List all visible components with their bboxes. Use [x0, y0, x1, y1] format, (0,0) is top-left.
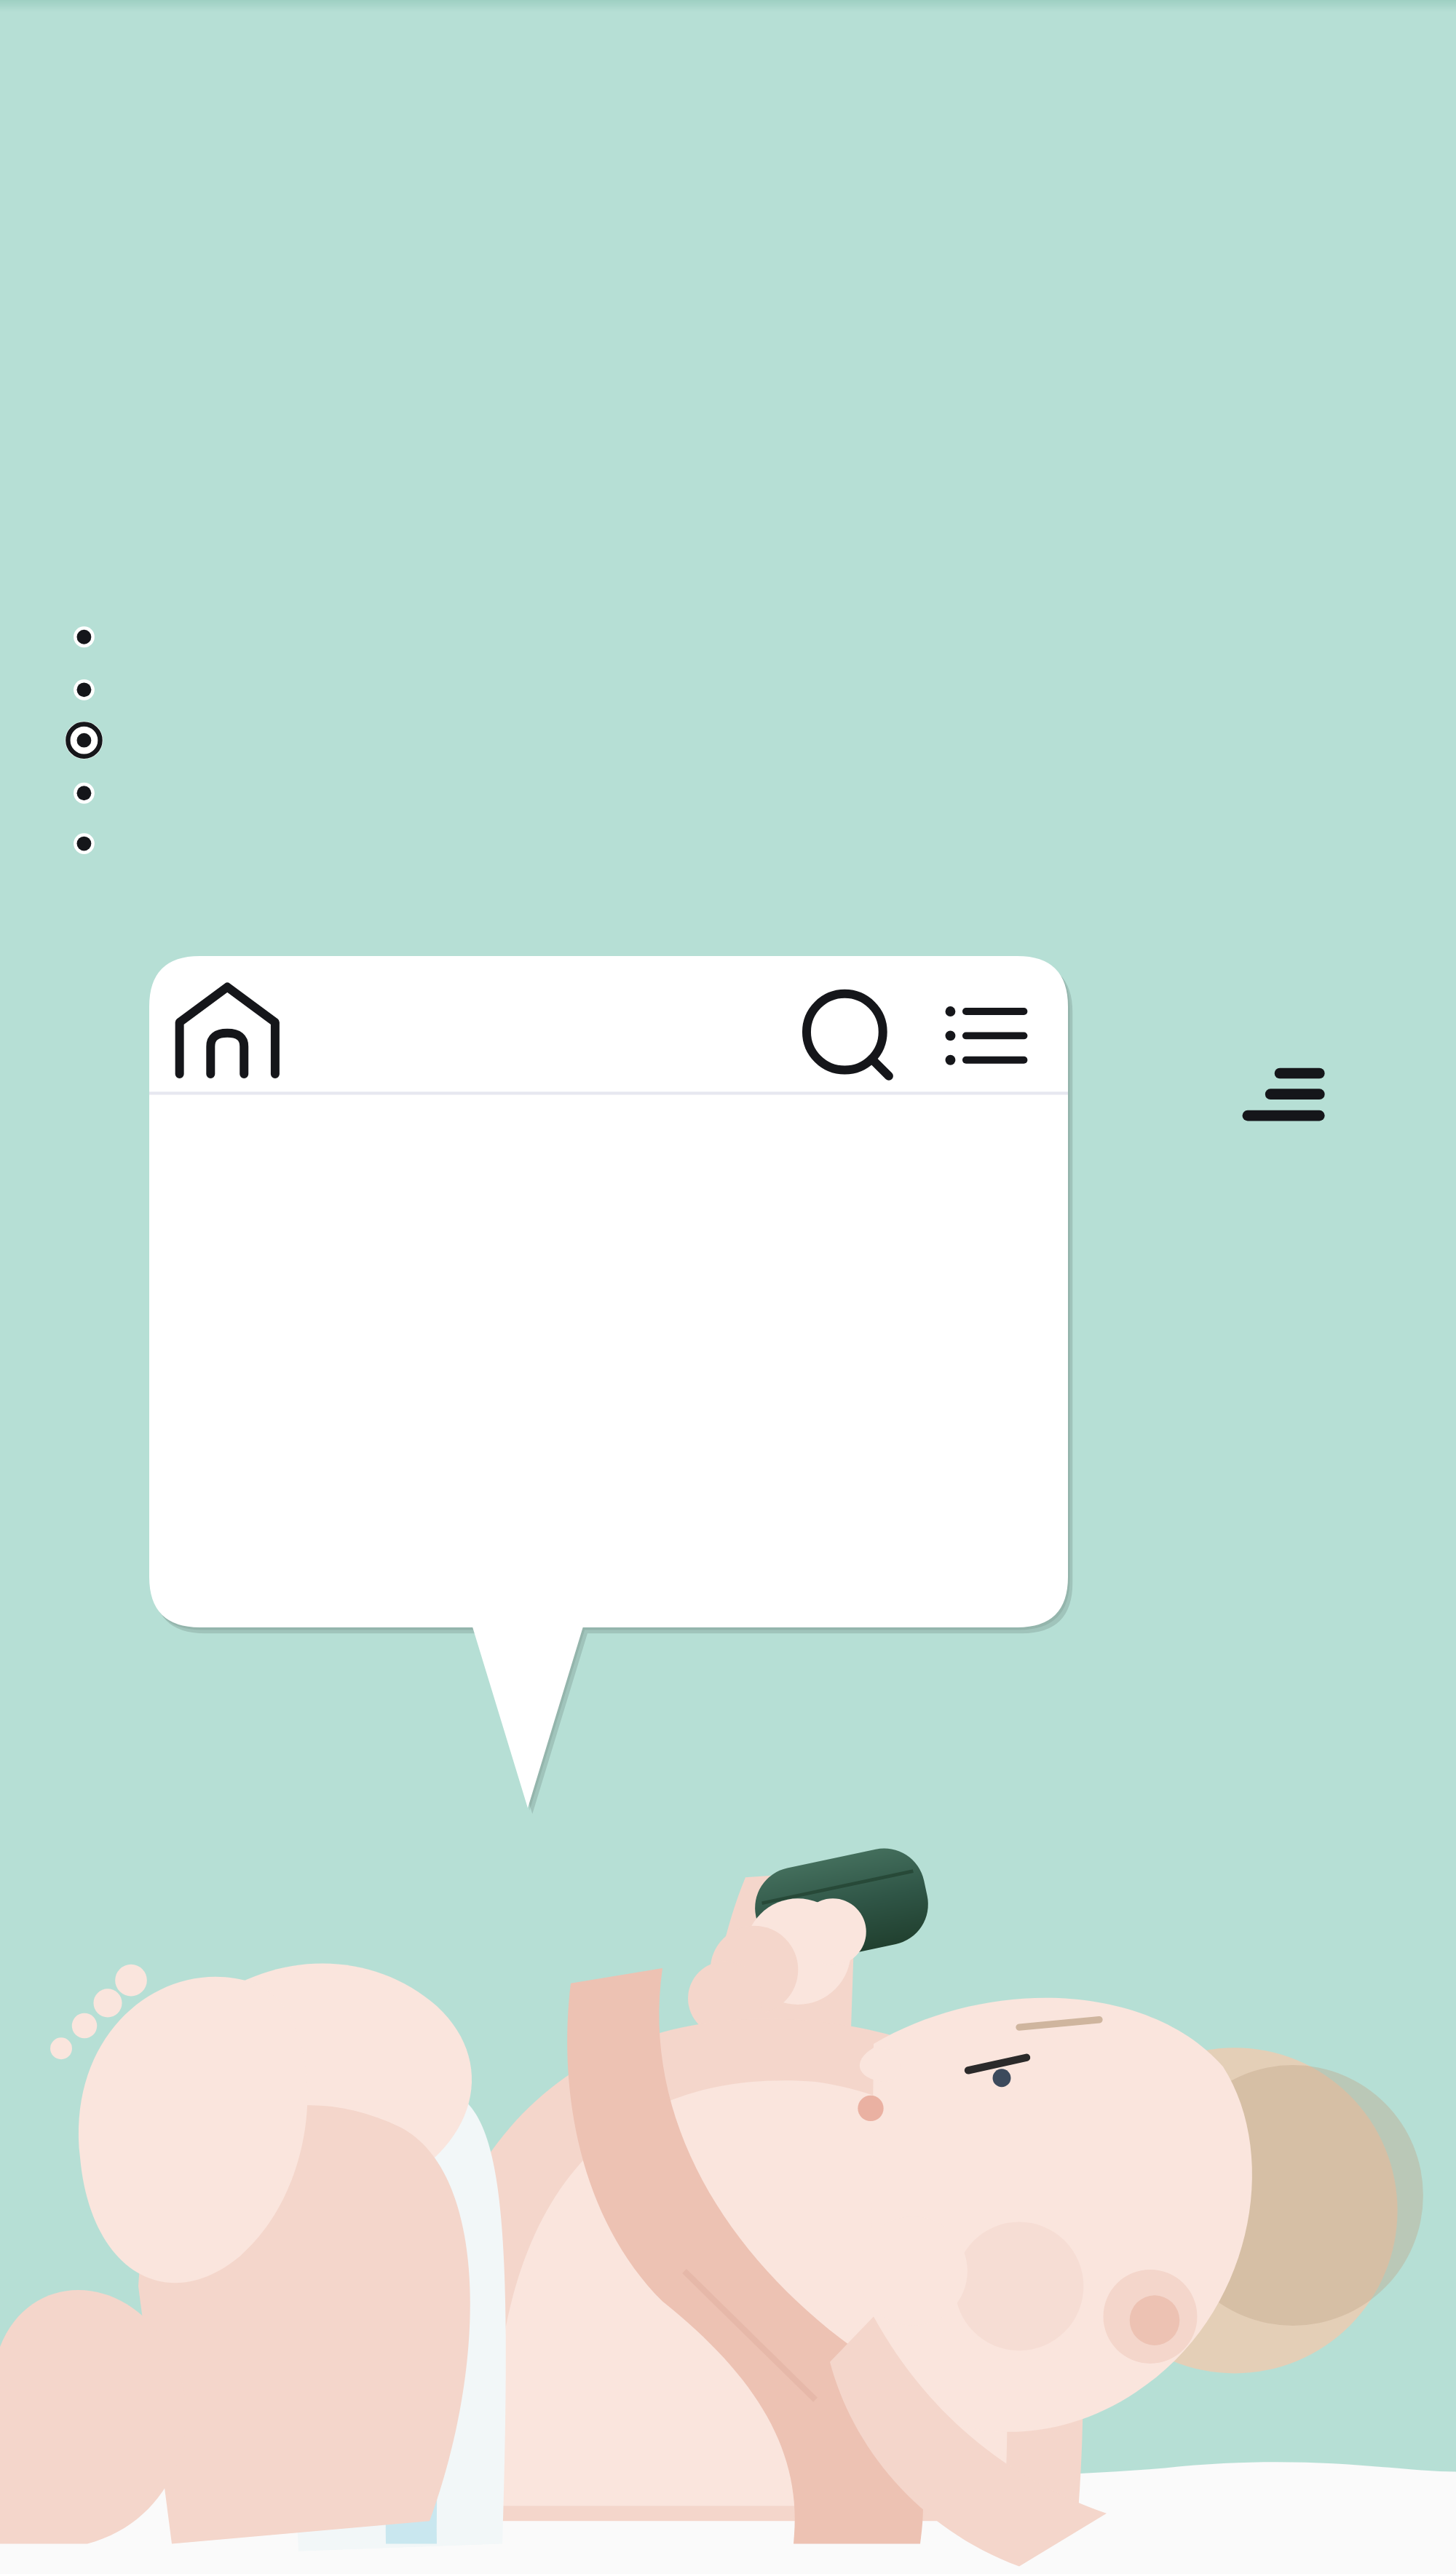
- button[interactable]: Page indicator: [63, 619, 109, 859]
- button[interactable]: Menu: [1222, 1043, 1356, 1145]
- button[interactable]: Message card: [149, 956, 1068, 1808]
